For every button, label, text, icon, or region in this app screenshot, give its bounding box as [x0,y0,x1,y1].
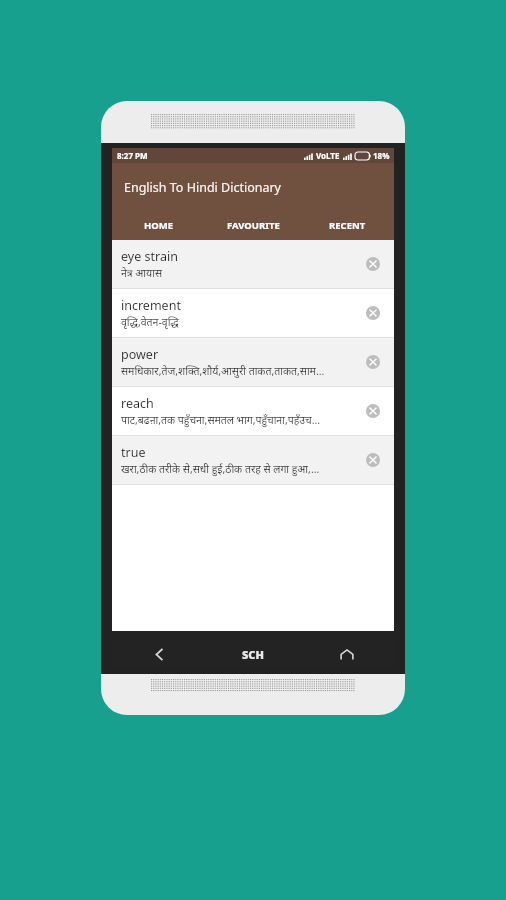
button[interactable]: Remove true [362,449,384,471]
staticText: reach [121,395,154,412]
button[interactable]: Remove increment [362,302,384,324]
button[interactable]: true [112,436,394,484]
staticText: 18% [373,150,390,161]
staticText: true [121,444,146,461]
button[interactable]: reach [112,387,394,435]
button[interactable]: HOME [112,211,206,240]
button[interactable]: Remove eye strain [362,253,384,275]
staticText: SCH [242,647,264,662]
button[interactable]: eye strain [112,240,394,288]
button[interactable]: power [112,338,394,386]
staticText: खरा,ठीक तरीके से,सधी हुई,ठीक तरह से लगा … [121,462,320,476]
button[interactable]: increment [112,289,394,337]
button[interactable]: FAVOURITE [206,211,300,240]
staticText: VoLTE [316,150,340,161]
button[interactable]: SCH [206,640,300,669]
button[interactable]: Remove power [362,351,384,373]
staticText: पाट,बढऩा,तक पहुँचना,समतल भाग,पहुँचाना,पह… [121,413,321,427]
staticText: FAVOURITE [227,219,280,232]
staticText: HOME [144,219,174,232]
staticText: eye strain [121,248,178,265]
staticText: नेत्र आयास [121,266,162,280]
staticText: power [121,346,159,363]
button[interactable]: Back [112,640,206,669]
staticText: increment [121,297,181,314]
staticText: English To Hindi Dictionary [124,179,281,196]
staticText: समधिकार,तेज,शक्ति,शौर्य,आसुरी ताकत,ताकत,… [121,364,325,378]
button[interactable]: RECENT [300,211,394,240]
button[interactable]: Home [300,640,394,669]
staticText: 8:27 PM [117,150,148,161]
staticText: वृद्धि,वेतन-वृद्धि [121,315,179,329]
button[interactable]: Remove reach [362,400,384,422]
staticText: RECENT [329,219,366,232]
